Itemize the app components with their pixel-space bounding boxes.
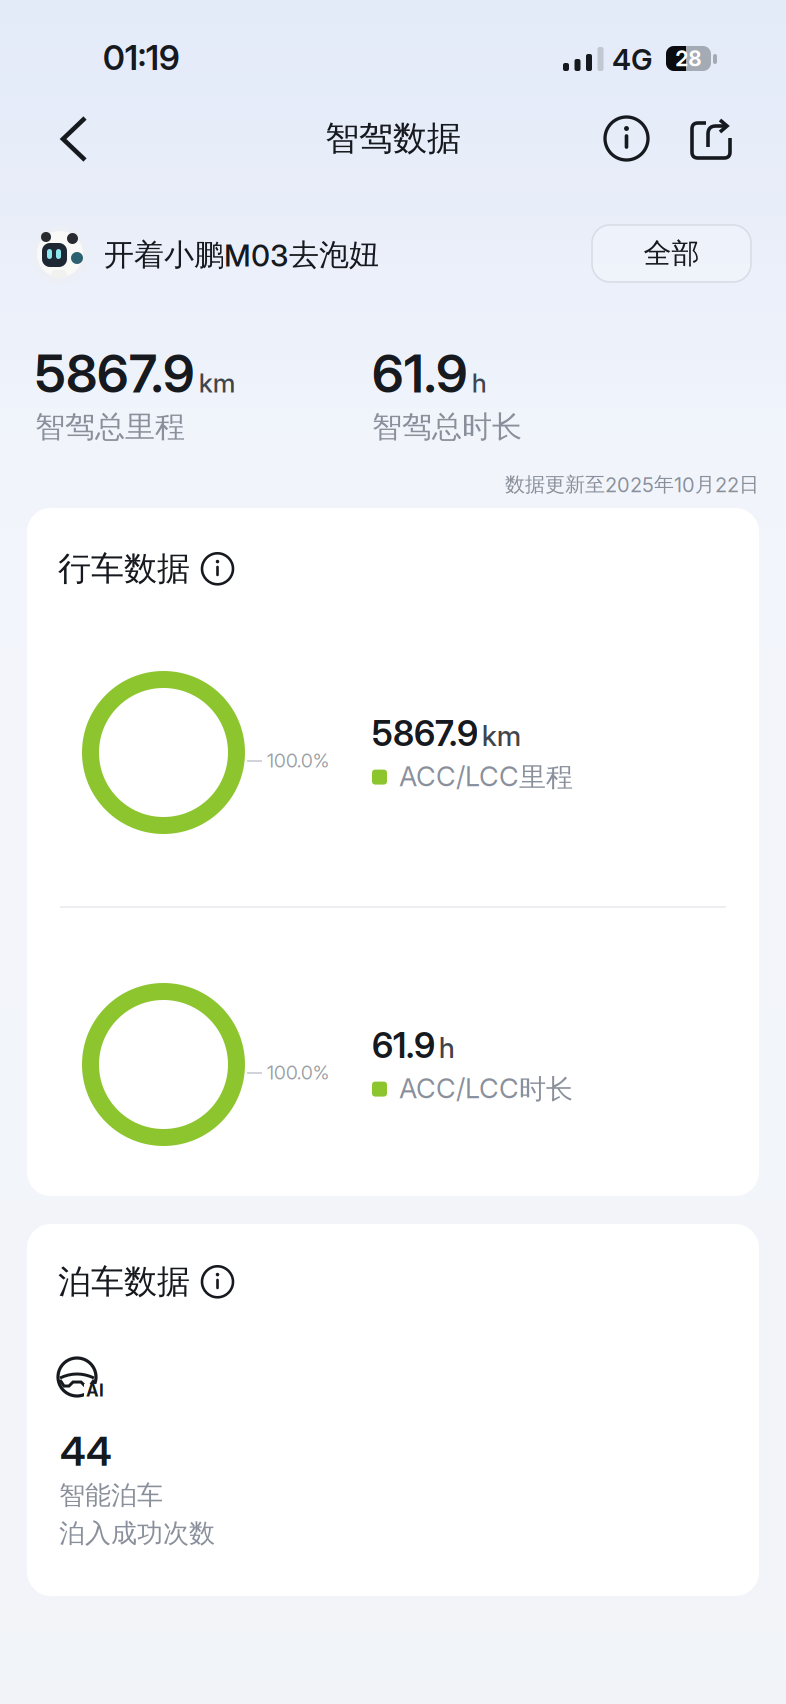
staticText: 61.9 <box>372 342 468 405</box>
staticText: km <box>482 719 521 753</box>
staticText: 全部 <box>643 236 699 271</box>
staticText: 泊入成功次数 <box>59 1517 215 1550</box>
staticText: h <box>472 367 487 399</box>
staticText: 智能泊车 <box>59 1479 163 1512</box>
staticText: ACC/LCC时长 <box>399 1072 573 1106</box>
staticText: 01:19 <box>103 37 180 78</box>
staticText: 数据更新至2025年10月22日 <box>505 472 759 497</box>
staticText: 智驾总里程 <box>35 408 185 446</box>
staticText: 5867.9 <box>35 342 195 405</box>
button[interactable]: Share <box>691 120 731 159</box>
staticText: ACC/LCC里程 <box>399 760 573 794</box>
button[interactable]: Info <box>202 553 233 584</box>
staticText: 44 <box>60 1427 112 1475</box>
staticText: 5867.9 <box>372 712 478 754</box>
staticText: h <box>439 1031 455 1065</box>
staticText: 智驾数据 <box>325 117 461 160</box>
button[interactable]: 全部 <box>592 225 751 282</box>
staticText: 100.0% <box>267 1061 329 1084</box>
staticText: 28 <box>675 46 701 71</box>
button[interactable]: Info <box>605 117 648 160</box>
staticText: km <box>199 367 235 399</box>
staticText: 泊车数据 <box>58 1261 190 1303</box>
staticText: 开着小鹏M03去泡妞 <box>104 236 379 274</box>
staticText: 4G <box>612 42 653 77</box>
staticText: AI <box>86 1380 104 1401</box>
staticText: 61.9 <box>372 1024 435 1066</box>
staticText: 100.0% <box>267 749 329 772</box>
button[interactable]: Info <box>202 1266 233 1297</box>
staticText: 智驾总时长 <box>372 408 522 446</box>
staticText: 行车数据 <box>58 548 190 590</box>
button[interactable]: Back <box>60 116 88 162</box>
